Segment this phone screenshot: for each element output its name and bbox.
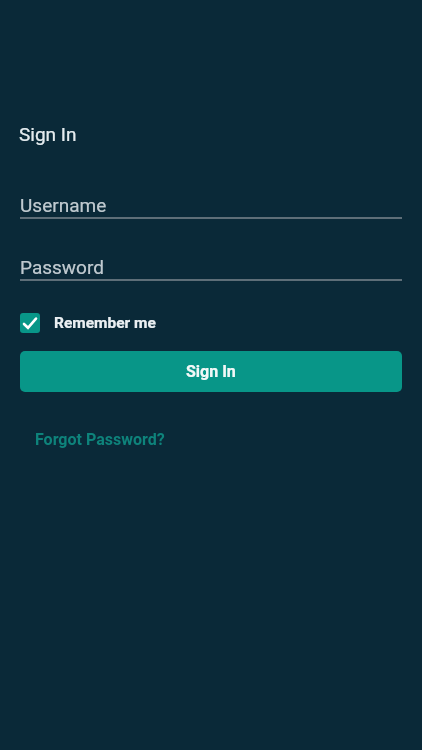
staticText: Sign In [186, 362, 236, 381]
staticText: Sign In [19, 123, 77, 145]
button[interactable]: Remember me [20, 313, 156, 333]
button[interactable]: Sign In [20, 351, 402, 392]
button[interactable]: Forgot Password? [35, 430, 165, 449]
staticText: Password [20, 256, 104, 278]
staticText: Username [20, 194, 107, 216]
staticText: Remember me [54, 314, 156, 332]
